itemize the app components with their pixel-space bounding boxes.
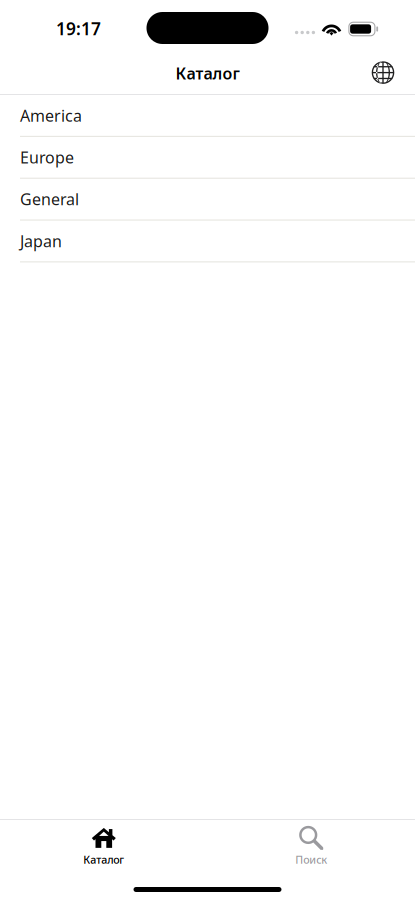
button[interactable]: General (20, 188, 395, 210)
staticText: General (20, 188, 79, 210)
button[interactable]: Europe (20, 147, 395, 168)
staticText: 19:17 (56, 17, 101, 40)
button[interactable]: Каталог (49, 820, 159, 868)
staticText: Japan (20, 230, 62, 251)
button[interactable]: Поиск (256, 820, 366, 868)
button[interactable]: America (20, 105, 395, 126)
staticText: Каталог (83, 852, 124, 867)
staticText: Поиск (295, 852, 327, 867)
staticText: Каталог (175, 63, 239, 84)
staticText: America (20, 105, 82, 126)
button[interactable]: Japan (20, 230, 395, 251)
button[interactable]: Change language (361, 54, 405, 92)
staticText: Europe (20, 147, 74, 168)
